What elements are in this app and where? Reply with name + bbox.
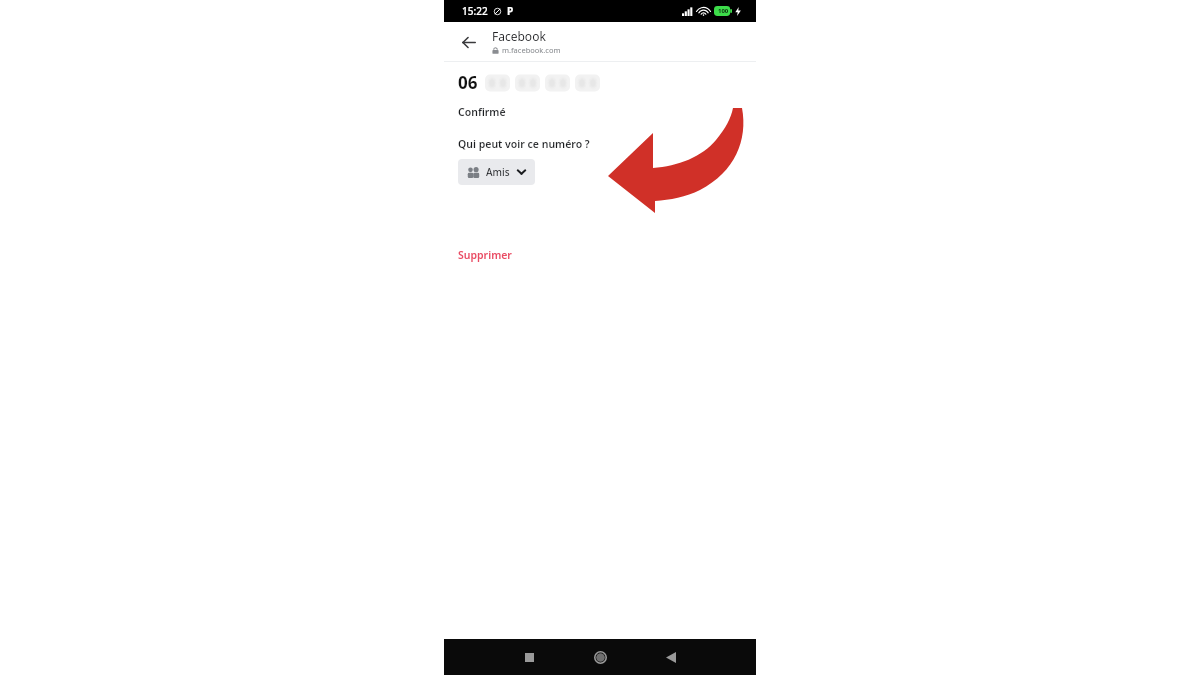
staticText: 100: [718, 7, 729, 15]
staticText: m.facebook.com: [502, 45, 561, 55]
button[interactable]: Back: [658, 644, 684, 670]
button[interactable]: Back: [454, 28, 482, 56]
staticText: Facebook: [492, 28, 546, 44]
staticText: Supprimer: [458, 248, 512, 262]
button[interactable]: Amis: [458, 159, 535, 185]
staticText: Qui peut voir ce numéro ?: [458, 137, 590, 151]
button[interactable]: Recent apps: [516, 644, 542, 670]
staticText: Confirmé: [458, 105, 506, 119]
staticText: Amis: [486, 165, 510, 179]
staticText: 15:22: [462, 4, 488, 18]
staticText: P: [507, 4, 514, 18]
button[interactable]: Home: [587, 644, 613, 670]
staticText: 06: [458, 71, 478, 94]
button[interactable]: Supprimer: [458, 248, 512, 262]
